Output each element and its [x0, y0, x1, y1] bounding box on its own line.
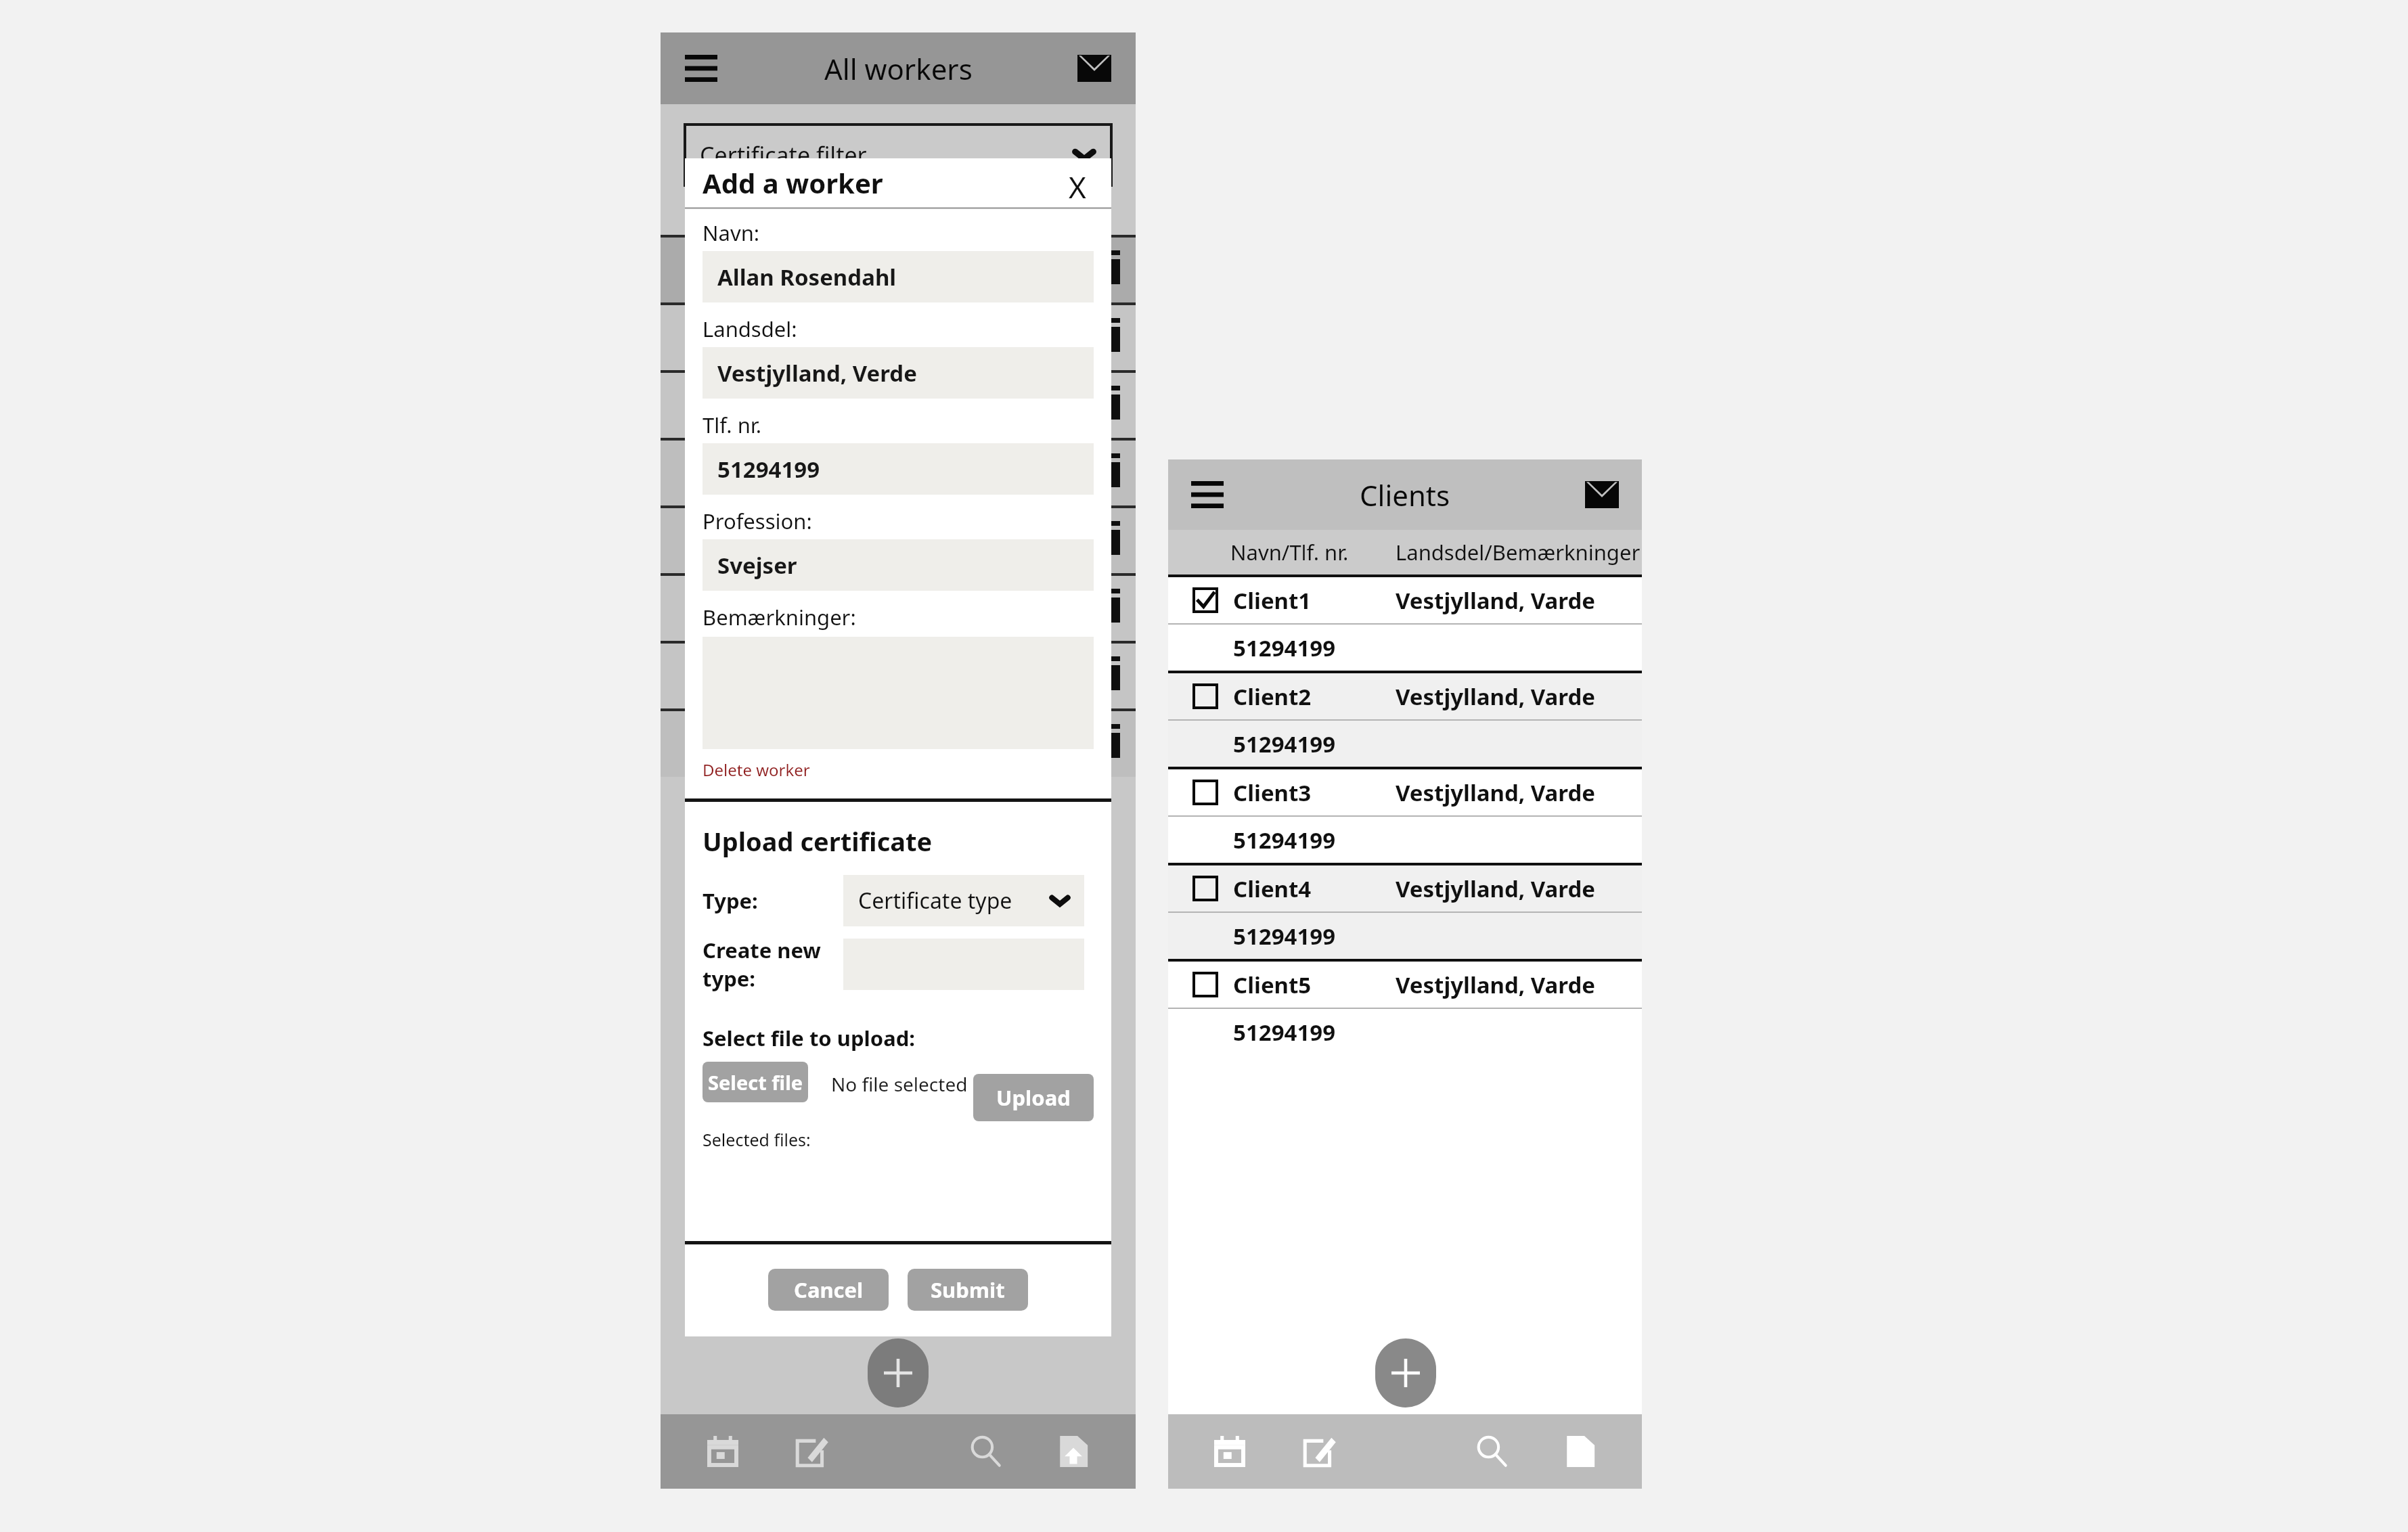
staticText: Certificate filter — [700, 139, 867, 171]
button[interactable]: Client1 — [1168, 574, 1642, 671]
button[interactable]: Add — [1375, 1338, 1436, 1407]
staticText: Vestjylland, Varde — [1396, 874, 1595, 904]
staticText: Type: — [703, 886, 843, 915]
button[interactable]: Client4 — [1168, 863, 1642, 959]
staticText: Navn/Tlf. nr. — [1230, 538, 1349, 566]
button[interactable]: Edit — [784, 1425, 837, 1478]
staticText: No file selected — [831, 1071, 968, 1097]
button[interactable]: Upload file — [1554, 1425, 1607, 1478]
staticText: Upload certificate — [703, 824, 933, 859]
staticText: All workers — [824, 49, 973, 88]
staticText: Cancel — [794, 1276, 864, 1304]
staticText: Vestjylland, Varde — [1396, 970, 1595, 1000]
staticText: Landsdel: — [703, 315, 797, 343]
staticText: 51294199 — [1233, 729, 1336, 759]
staticText: Clients — [1360, 476, 1450, 514]
button[interactable]: Certificate filter — [685, 125, 1111, 185]
button[interactable]: Delete worker — [703, 759, 810, 781]
staticText: Create new type: — [703, 936, 843, 993]
button[interactable]: Cancel — [768, 1269, 889, 1311]
button[interactable]: Menu — [685, 55, 717, 82]
staticText: Bemærkninger: — [703, 603, 856, 631]
staticText: Selected files: — [703, 1128, 811, 1151]
button[interactable]: Client2 — [1168, 671, 1642, 767]
button[interactable]: Allan Rosendahl — [703, 251, 1094, 302]
staticText: Certificate type — [858, 886, 1012, 916]
staticText: Allan Rosendahl — [717, 262, 897, 292]
button[interactable]: Edit — [1292, 1425, 1345, 1478]
button[interactable]: Messages — [1585, 481, 1619, 508]
button[interactable]: Select file — [703, 1062, 808, 1102]
staticText: Vestjylland, Varde — [1396, 778, 1595, 808]
button[interactable]: Certificate type — [843, 875, 1084, 926]
staticText: Upload — [996, 1083, 1071, 1112]
button[interactable]: Vestjylland, Verde — [703, 347, 1094, 399]
staticText: 51294199 — [1233, 633, 1336, 663]
staticText: Client4 — [1233, 874, 1312, 904]
staticText: Client1 — [1233, 585, 1312, 616]
staticText: Profession: — [703, 507, 812, 535]
button[interactable]: Upload — [973, 1074, 1094, 1121]
staticText: Navn: — [703, 219, 760, 247]
staticText: Client5 — [1233, 970, 1312, 1000]
staticText: Submit — [931, 1276, 1005, 1304]
button[interactable]: Add — [868, 1338, 929, 1407]
staticText: 51294199 — [1233, 825, 1336, 855]
button[interactable]: Calendar — [1203, 1425, 1256, 1478]
staticText: 51294199 — [1233, 921, 1336, 951]
button[interactable]: Messages — [1077, 55, 1111, 82]
button[interactable]: Search — [959, 1425, 1012, 1478]
staticText: Add a worker — [703, 164, 883, 201]
button[interactable]: Calendar — [696, 1425, 749, 1478]
staticText: Svejser — [717, 550, 797, 581]
staticText: Select file — [708, 1069, 803, 1096]
button[interactable]: Upload file — [1047, 1425, 1100, 1478]
staticText: Client2 — [1233, 681, 1312, 712]
staticText: Select file to upload: — [703, 1024, 915, 1052]
button[interactable]: Client3 — [1168, 767, 1642, 863]
button[interactable]: Search — [1465, 1425, 1518, 1478]
staticText: 51294199 — [717, 454, 820, 485]
button[interactable]: Submit — [908, 1269, 1028, 1311]
staticText: X — [1069, 166, 1086, 199]
button[interactable]: Menu — [1191, 481, 1224, 508]
button[interactable]: Svejser — [703, 539, 1094, 591]
staticText: Vestjylland, Varde — [1396, 681, 1595, 712]
staticText: 51294199 — [1233, 1017, 1336, 1047]
button[interactable]: 51294199 — [703, 443, 1094, 495]
staticText: Client3 — [1233, 778, 1312, 808]
button[interactable]: Client5 — [1168, 959, 1642, 1055]
staticText: Tlf. nr. — [703, 411, 761, 439]
button[interactable]: Close — [1061, 166, 1094, 199]
staticText: Landsdel/Bemærkninger — [1396, 538, 1641, 566]
staticText: Vestjylland, Verde — [717, 358, 917, 388]
staticText: Vestjylland, Varde — [1396, 585, 1595, 616]
